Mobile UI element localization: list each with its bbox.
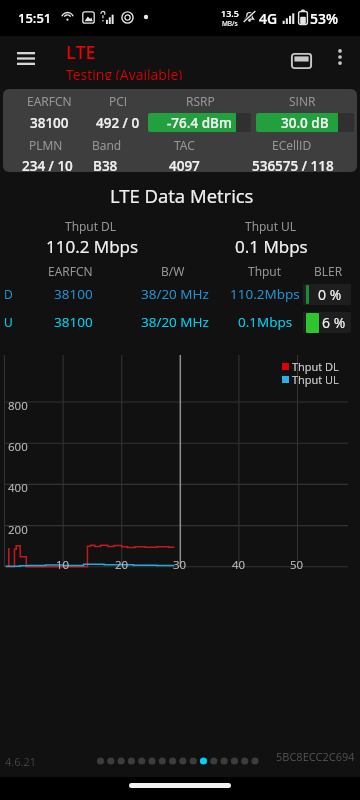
staticText: 40	[232, 557, 246, 573]
staticText: 400	[8, 480, 28, 496]
staticText: Thput DL	[292, 359, 339, 374]
staticText: 600	[8, 439, 28, 455]
staticText: 38100	[54, 285, 93, 303]
button[interactable]: More options	[326, 43, 354, 71]
staticText: 53%	[310, 9, 339, 28]
staticText: 20	[115, 557, 129, 573]
staticText: RSRP	[186, 93, 215, 109]
staticText: Thput	[248, 263, 281, 279]
staticText: 800	[8, 398, 28, 414]
staticText: -76.4 dBm	[167, 114, 232, 132]
staticText: D	[4, 286, 13, 302]
staticText: 0.1Mbps	[238, 313, 293, 331]
staticText: 536575 / 118	[252, 157, 334, 172]
staticText: EARFCN	[48, 263, 93, 279]
staticText: PCI	[109, 93, 128, 109]
staticText: PLMN	[29, 137, 63, 153]
staticText: 0 %	[318, 285, 342, 304]
staticText: ECellID	[272, 137, 312, 153]
staticText: Testing (Available)	[66, 65, 183, 80]
staticText: Thput DL	[65, 218, 117, 234]
staticText: Band	[92, 137, 122, 153]
staticText: 234 / 10	[22, 157, 73, 172]
staticText: 110.2 Mbps	[46, 235, 139, 258]
staticText: U	[4, 314, 13, 330]
staticText: 0.1 Mbps	[235, 235, 308, 258]
staticText: B/W	[161, 263, 185, 279]
staticText: 10	[56, 557, 70, 573]
button[interactable]: LTE	[66, 40, 276, 80]
staticText: 38100	[54, 313, 93, 331]
staticText: 200	[8, 522, 28, 538]
staticText: 5BC8ECC2C694	[276, 749, 355, 764]
button[interactable]: Navigation menu	[8, 40, 44, 76]
staticText: SINR	[289, 93, 316, 109]
button[interactable]: Layout view	[283, 43, 319, 79]
staticText: LTE Data Metrics	[110, 183, 254, 207]
staticText: 4097	[169, 157, 200, 172]
staticText: 30	[173, 557, 187, 573]
staticText: EARFCN	[27, 93, 72, 109]
staticText: 30.0 dB	[281, 114, 329, 132]
staticText: 38/20 MHz	[141, 313, 209, 331]
staticText: 110.2Mbps	[230, 285, 300, 303]
staticText: 13.5	[221, 7, 239, 19]
staticText: 4.6.21	[5, 754, 37, 769]
staticText: BLER	[314, 263, 343, 279]
staticText: 4G	[259, 9, 278, 28]
staticText: Thput UL	[292, 372, 339, 387]
staticText: LTE	[66, 40, 96, 65]
staticText: 38/20 MHz	[141, 285, 209, 303]
staticText: TAC	[174, 137, 195, 153]
staticText: 38100	[30, 114, 69, 132]
staticText: MB/s	[222, 19, 238, 28]
staticText: Thput UL	[245, 218, 297, 234]
staticText: 492 / 0	[96, 114, 140, 132]
staticText: 15:51	[18, 9, 52, 27]
staticText: 6 %	[322, 313, 346, 332]
staticText: B38	[93, 157, 118, 172]
staticText: 50	[290, 557, 304, 573]
